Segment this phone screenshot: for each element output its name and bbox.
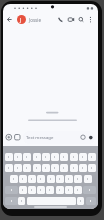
- button[interactable]: [60, 153, 68, 161]
- button[interactable]: [37, 175, 45, 183]
- button[interactable]: [70, 153, 78, 161]
- staticText: J: [20, 17, 22, 24]
- button[interactable]: J: [17, 15, 26, 24]
- button[interactable]: [79, 153, 87, 161]
- button[interactable]: [28, 175, 36, 183]
- button[interactable]: [5, 186, 18, 194]
- button[interactable]: [5, 197, 18, 205]
- button[interactable]: [19, 186, 27, 194]
- button[interactable]: [23, 153, 31, 161]
- button[interactable]: [86, 197, 96, 205]
- button[interactable]: [74, 186, 82, 194]
- button[interactable]: [56, 175, 64, 183]
- button[interactable]: [70, 164, 78, 172]
- button[interactable]: [51, 164, 59, 172]
- button[interactable]: [27, 197, 76, 205]
- button[interactable]: [28, 186, 36, 194]
- button[interactable]: [60, 164, 68, 172]
- button[interactable]: [51, 153, 59, 161]
- button[interactable]: [37, 186, 45, 194]
- button[interactable]: [77, 197, 84, 205]
- button[interactable]: [83, 186, 96, 194]
- button[interactable]: [88, 153, 96, 161]
- staticText: Text message: [26, 134, 54, 140]
- button[interactable]: [88, 164, 96, 172]
- button[interactable]: [65, 175, 73, 183]
- button[interactable]: [10, 175, 18, 183]
- button[interactable]: [23, 164, 31, 172]
- button[interactable]: [33, 153, 41, 161]
- button[interactable]: [19, 175, 27, 183]
- button[interactable]: [14, 164, 22, 172]
- button[interactable]: [84, 175, 92, 183]
- button[interactable]: [23, 131, 95, 144]
- button[interactable]: [65, 186, 73, 194]
- button[interactable]: [5, 164, 13, 172]
- button[interactable]: [14, 153, 22, 161]
- button[interactable]: [46, 186, 54, 194]
- button[interactable]: [79, 164, 87, 172]
- staticText: Jossie: [29, 17, 41, 23]
- button[interactable]: [47, 175, 55, 183]
- button[interactable]: [18, 197, 25, 205]
- button[interactable]: [74, 175, 82, 183]
- button[interactable]: [5, 153, 13, 161]
- button[interactable]: [56, 186, 64, 194]
- button[interactable]: [33, 164, 41, 172]
- button[interactable]: [42, 164, 50, 172]
- button[interactable]: [42, 153, 50, 161]
